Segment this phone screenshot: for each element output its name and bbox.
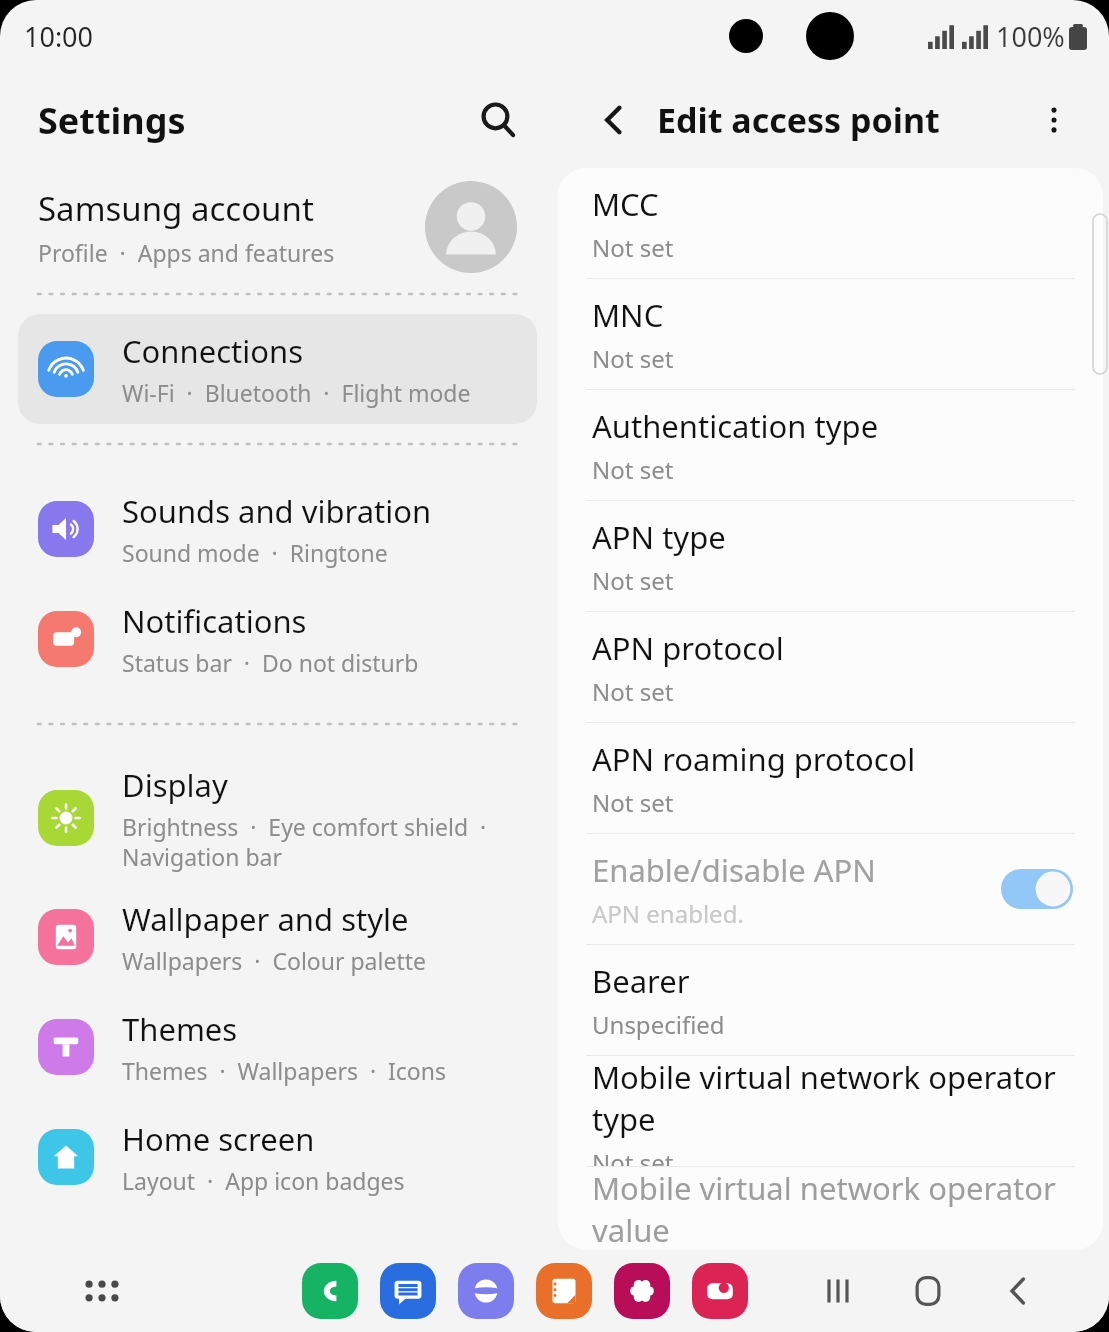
staticText: Wallpaper and style [122,898,409,940]
staticText: Not set [592,231,674,264]
staticText: Samsung account [38,186,314,231]
button[interactable]: Back [585,91,643,149]
staticText: Status bar · Do not disturb [122,647,419,678]
staticText: Home screen [122,1118,315,1160]
staticText: Themes [122,1008,238,1050]
staticText: Themes · Wallpapers · Icons [122,1055,447,1086]
staticText: Notifications [122,600,307,642]
button[interactable]: Search [467,89,529,151]
button[interactable]: Connections [18,314,537,424]
button[interactable]: More options [1025,91,1083,149]
button[interactable]: Display [0,754,555,882]
button[interactable]: MNC [558,279,1103,389]
staticText: Brightness · Eye comfort shield · Naviga… [122,811,487,872]
staticText: Not set [592,342,674,375]
staticText: APN roaming protocol [592,738,916,780]
staticText: Edit access point [657,97,940,143]
button[interactable]: Mobile virtual network operator type [558,1056,1103,1166]
staticText: Not set [592,1146,674,1166]
staticText: Bearer [592,960,690,1002]
button[interactable]: Home [897,1260,959,1322]
staticText: Not set [592,564,674,597]
button[interactable]: Themes [0,992,555,1102]
staticText: Mobile virtual network operator value [592,1167,1073,1250]
staticText: 10:00 [24,18,94,55]
button[interactable]: Enable/disable APN [558,834,1103,944]
staticText: APN protocol [592,627,784,669]
staticText: Authentication type [592,405,879,447]
button[interactable]: App [692,1263,748,1319]
staticText: Layout · App icon badges [122,1165,405,1196]
button[interactable]: Mobile virtual network operator value [558,1167,1103,1250]
button[interactable]: Home screen [0,1102,555,1212]
button[interactable]: Samsung account [0,168,555,286]
staticText: Mobile virtual network operator type [592,1056,1073,1140]
button[interactable]: Back [987,1260,1049,1322]
staticText: Connections [122,330,303,372]
staticText: Profile · Apps and features [38,237,335,268]
button[interactable]: Notifications [0,584,555,694]
button[interactable]: Bearer [558,945,1103,1055]
button[interactable]: All apps [78,1267,126,1315]
button[interactable]: Recents [807,1260,869,1322]
staticText: Enable/disable APN [592,849,876,891]
button[interactable]: App [614,1263,670,1319]
staticText: Not set [592,675,674,708]
staticText: Unspecified [592,1008,725,1041]
staticText: Wallpapers · Colour palette [122,945,426,976]
button[interactable]: APN roaming protocol [558,723,1103,833]
button[interactable]: App [536,1263,592,1319]
button[interactable]: App [458,1263,514,1319]
staticText: APN type [592,516,726,558]
staticText: 100% [996,18,1065,55]
button[interactable] [1001,869,1073,909]
button[interactable]: Sounds and vibration [0,474,555,584]
button[interactable]: APN protocol [558,612,1103,722]
button[interactable]: Wallpaper and style [0,882,555,992]
staticText: Settings [38,96,186,145]
button[interactable]: App [302,1263,358,1319]
staticText: Not set [592,786,674,819]
staticText: Display [122,764,228,806]
staticText: APN enabled. [592,897,744,930]
button[interactable]: APN type [558,501,1103,611]
button[interactable]: App [380,1263,436,1319]
staticText: MNC [592,294,664,336]
button[interactable]: Authentication type [558,390,1103,500]
staticText: MCC [592,183,659,225]
button[interactable]: MCC [558,168,1103,278]
staticText: Sound mode · Ringtone [122,537,388,568]
staticText: Not set [592,453,674,486]
staticText: Wi-Fi · Bluetooth · Flight mode [122,377,471,408]
staticText: Sounds and vibration [122,490,432,532]
